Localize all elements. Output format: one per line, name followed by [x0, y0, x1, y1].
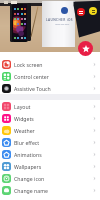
- staticText: Widgets: [14, 115, 34, 122]
- button[interactable]: Weather: [0, 124, 100, 136]
- button[interactable]: Blur effect: [0, 136, 100, 148]
- staticText: Weather: [14, 127, 35, 134]
- button[interactable]: Animations: [0, 148, 100, 160]
- staticText: Blur effect: [14, 139, 40, 146]
- button[interactable]: Layout: [0, 100, 100, 112]
- staticText: LAUNCHER iOS: [46, 18, 73, 22]
- staticText: Animations: [14, 151, 42, 158]
- button[interactable]: Change icon: [0, 172, 100, 184]
- button[interactable]: Rate app: [78, 41, 93, 56]
- button[interactable]: Lock screen: [0, 58, 100, 70]
- button[interactable]: Wallpapers: [0, 160, 100, 172]
- staticText: Layout: [14, 103, 31, 110]
- button[interactable]: Change name: [0, 184, 100, 196]
- staticText: Change icon: [14, 175, 45, 182]
- button[interactable]: Assistive Touch: [0, 82, 100, 94]
- staticText: Assistive Touch: [14, 85, 51, 92]
- staticText: Control center: [14, 73, 49, 80]
- staticText: Wallpapers: [14, 163, 42, 170]
- staticText: Lock screen: [14, 61, 43, 68]
- button[interactable]: Control center: [0, 70, 100, 82]
- staticText: Change name: [14, 187, 48, 194]
- staticText: Hello and best: [55, 23, 70, 26]
- button[interactable]: Widgets: [0, 112, 100, 124]
